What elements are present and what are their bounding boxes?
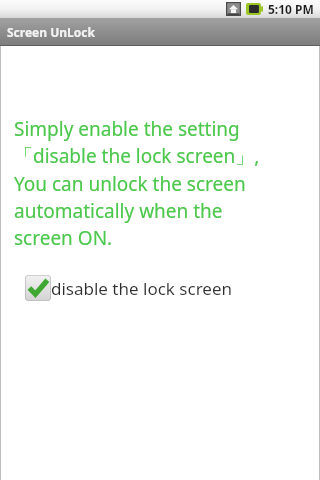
staticText: disable the lock screen	[51, 277, 233, 300]
staticText: Simply enable the setting 「disable the l…	[14, 116, 312, 251]
staticText: Screen UnLock	[7, 24, 95, 40]
staticText: 5:10 PM	[268, 1, 314, 17]
button[interactable]: disable the lock screen checkbox	[0, 273, 320, 303]
other: disable the lock screen checkbox	[25, 275, 51, 301]
